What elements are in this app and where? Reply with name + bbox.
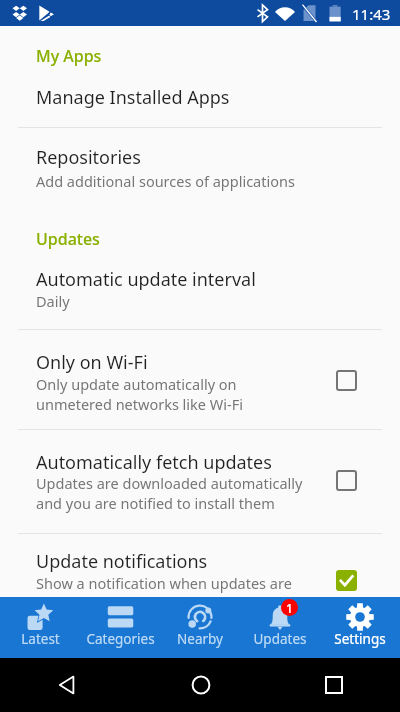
button[interactable]: Back: [0, 658, 134, 712]
staticText: Categories: [86, 630, 155, 648]
button[interactable]: Automatically fetch updates: [0, 438, 400, 514]
staticText: Manage Installed Apps: [36, 85, 230, 110]
button[interactable]: Update notifications: [0, 540, 400, 616]
staticText: Add additional sources of applications: [36, 171, 295, 191]
staticText: My Apps: [36, 45, 102, 67]
staticText: Only on Wi-Fi: [36, 350, 148, 375]
staticText: Updates: [253, 630, 307, 648]
staticText: Automatic update interval: [36, 267, 256, 292]
staticText: 1: [286, 600, 293, 616]
button[interactable]: Manage Installed Apps: [0, 72, 400, 122]
staticText: Update notifications: [36, 549, 208, 574]
button[interactable]: 1: [240, 597, 320, 658]
staticText: Only update automatically on unmetered n…: [36, 374, 243, 414]
button[interactable]: Settings: [320, 597, 400, 658]
staticText: 11:43: [352, 4, 391, 24]
button[interactable]: Recent apps: [267, 658, 400, 712]
staticText: Latest: [21, 630, 60, 648]
staticText: Settings: [334, 630, 386, 648]
button[interactable]: Nearby: [160, 597, 240, 658]
button[interactable]: Repositories: [0, 134, 400, 190]
button[interactable]: Unchecked: [326, 460, 366, 500]
staticText: Updates: [36, 228, 100, 250]
button[interactable]: Checked: [326, 560, 366, 600]
button[interactable]: Home: [134, 658, 267, 712]
staticText: Nearby: [177, 630, 223, 648]
staticText: Automatically fetch updates: [36, 450, 272, 475]
button[interactable]: Automatic update interval: [0, 256, 400, 312]
staticText: Show a notification when updates are ava…: [36, 573, 292, 613]
staticText: Updates are downloaded automatically and…: [36, 473, 303, 513]
button[interactable]: Unchecked: [326, 360, 366, 400]
button[interactable]: Only on Wi-Fi: [0, 338, 400, 414]
button[interactable]: Latest: [0, 597, 80, 658]
staticText: Repositories: [36, 145, 141, 170]
staticText: Daily: [36, 291, 70, 311]
button[interactable]: Categories: [80, 597, 160, 658]
